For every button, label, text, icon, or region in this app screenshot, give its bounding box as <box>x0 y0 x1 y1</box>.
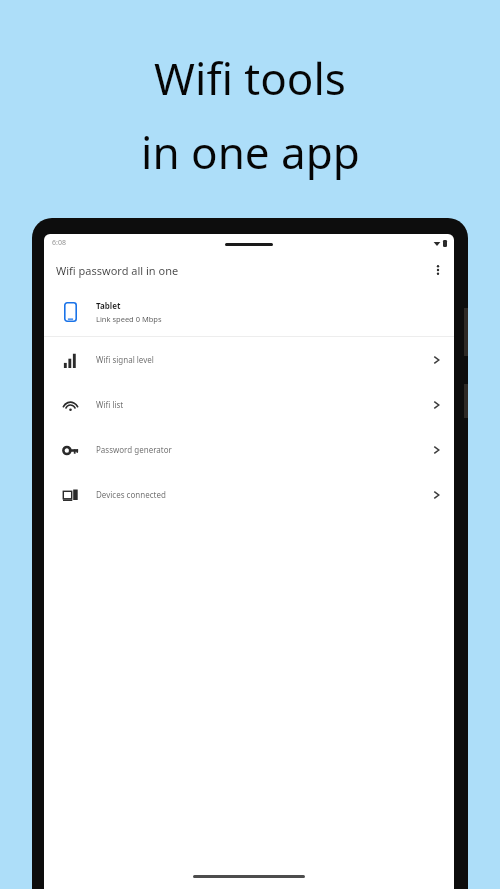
staticText: in one app <box>141 122 360 182</box>
staticText: Wifi tools <box>154 48 346 108</box>
button[interactable]: Wifi signal level <box>44 337 454 382</box>
button[interactable]: Devices connected <box>44 472 454 517</box>
staticText: Wifi signal level <box>96 354 154 365</box>
staticText: Tablet <box>96 300 121 311</box>
staticText: Link speed 0 Mbps <box>96 314 162 324</box>
button[interactable]: More options <box>422 254 454 286</box>
button[interactable]: Password generator <box>44 427 454 472</box>
button[interactable]: Tablet <box>44 288 454 336</box>
staticText: Wifi list <box>96 399 124 410</box>
staticText: Wifi password all in one <box>56 263 179 278</box>
staticText: Devices connected <box>96 489 166 500</box>
button[interactable]: Wifi list <box>44 382 454 427</box>
staticText: 6:08 <box>52 238 66 248</box>
staticText: Password generator <box>96 444 172 455</box>
